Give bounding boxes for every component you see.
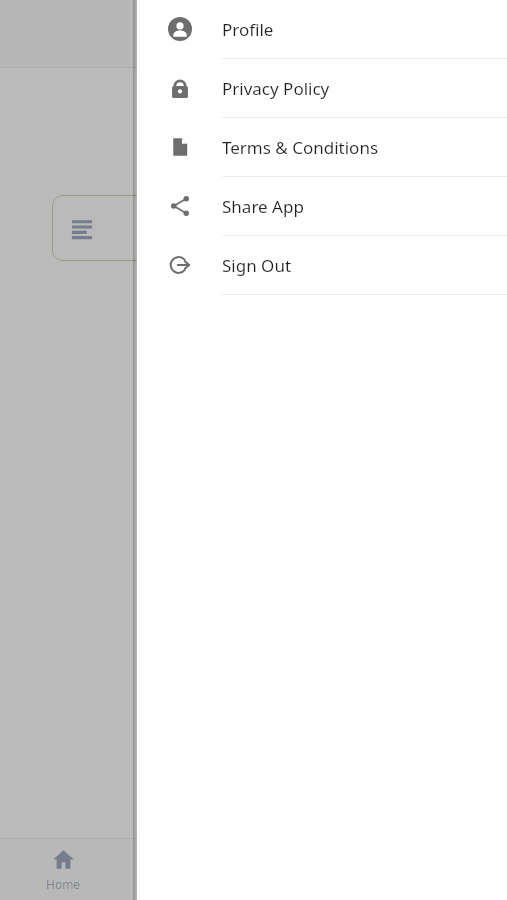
staticText: Sign Out bbox=[222, 254, 292, 277]
button[interactable]: Terms & Conditions bbox=[137, 118, 507, 177]
staticText: Profile bbox=[222, 18, 274, 41]
button[interactable] bbox=[52, 195, 455, 261]
staticText: After you submit your request bbox=[148, 139, 360, 159]
staticText: Terms & Conditions bbox=[222, 136, 379, 159]
button[interactable]: Referrals bbox=[126, 839, 253, 900]
button[interactable]: Share App bbox=[137, 177, 507, 236]
button[interactable]: Privacy Policy bbox=[137, 59, 507, 118]
button[interactable]: Profile bbox=[137, 0, 507, 59]
staticText: Privacy Policy bbox=[222, 77, 330, 100]
staticText: Request bbox=[206, 89, 302, 123]
button[interactable]: Home bbox=[0, 839, 126, 900]
staticText: Share App bbox=[222, 195, 304, 218]
staticText: Home bbox=[46, 876, 81, 892]
button[interactable]: Sign Out bbox=[137, 236, 507, 295]
button[interactable]: Close navigation drawer bbox=[0, 0, 507, 900]
